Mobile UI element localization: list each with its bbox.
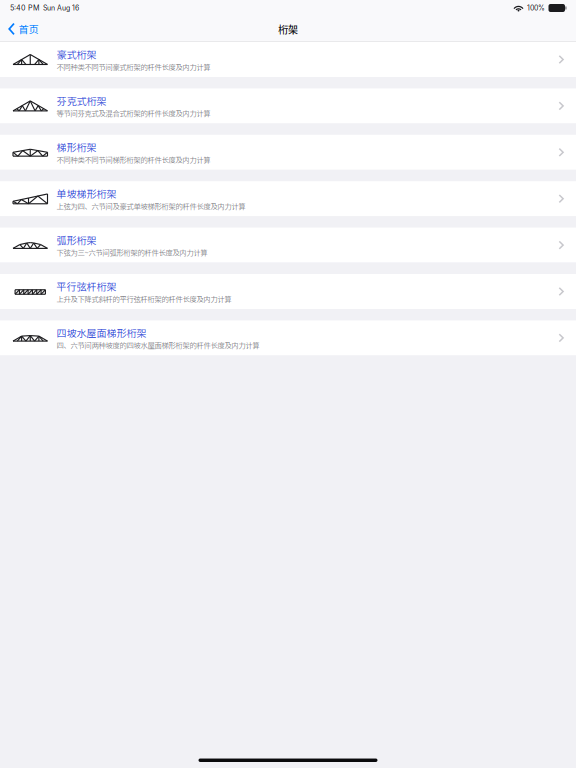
staticText: Sun Aug 16 [43, 4, 79, 12]
staticText: 四坡水屋面梯形桁架 [56, 325, 146, 340]
staticText: 平行弦杆桁架 [56, 279, 116, 293]
staticText: 5:40 PM [10, 4, 40, 12]
staticText: 100% [527, 4, 545, 12]
staticText: 弧形桁架 [56, 233, 96, 247]
button[interactable]: 四坡水屋面梯形桁架 [0, 320, 576, 355]
staticText: 不同种类不同节间梯形桁架的杆件长度及内力计算 [56, 154, 210, 165]
staticText: 等节间芬克式及混合式桁架的杆件长度及内力计算 [56, 108, 210, 118]
staticText: 下弦为三~六节间弧形桁架的杆件长度及内力计算 [56, 247, 207, 258]
staticText: 豪式桁架 [56, 47, 96, 61]
staticText: 桁架 [278, 22, 298, 36]
button[interactable]: 梯形桁架 [0, 135, 576, 170]
staticText: 芬克式桁架 [56, 93, 106, 108]
staticText: 单坡梯形桁架 [56, 186, 116, 201]
button[interactable]: 首页 [0, 22, 38, 36]
button[interactable]: 平行弦杆桁架 [0, 274, 576, 309]
staticText: 不同种类不同节间豪式桁架的杆件长度及内力计算 [56, 61, 210, 72]
staticText: 梯形桁架 [56, 140, 96, 154]
staticText: 上升及下降式斜杆的平行弦杆桁架的杆件长度及内力计算 [56, 293, 231, 304]
button[interactable]: 芬克式桁架 [0, 88, 576, 123]
staticText: 四、六节间两种坡度的四坡水屋面梯形桁架的杆件长度及内力计算 [56, 340, 259, 350]
button[interactable]: 豪式桁架 [0, 42, 576, 77]
button[interactable]: 弧形桁架 [0, 228, 576, 263]
staticText: 上弦为四、六节间及豪式单坡梯形桁架的杆件长度及内力计算 [56, 201, 245, 211]
staticText: 首页 [18, 22, 38, 36]
button[interactable]: 单坡梯形桁架 [0, 181, 576, 216]
